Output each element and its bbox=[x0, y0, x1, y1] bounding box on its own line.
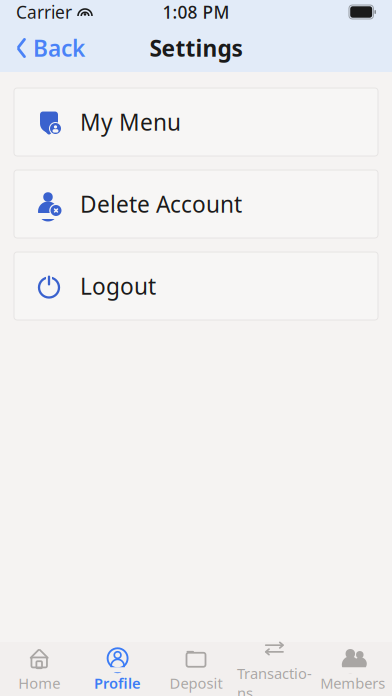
button[interactable]: Home bbox=[0, 639, 78, 696]
button[interactable]: Back bbox=[0, 25, 97, 71]
staticText: Members bbox=[320, 673, 385, 693]
staticText: Profile bbox=[94, 673, 141, 693]
button[interactable]: Deposit bbox=[157, 639, 235, 696]
staticText: Home bbox=[18, 673, 60, 693]
staticText: Logout bbox=[80, 271, 156, 301]
staticText: Carrier bbox=[16, 0, 72, 23]
button[interactable]: My Menu bbox=[14, 88, 378, 156]
staticText: Deposit bbox=[169, 673, 222, 693]
button[interactable]: Transactions bbox=[235, 629, 314, 696]
button[interactable]: Members bbox=[314, 639, 392, 696]
staticText: Back bbox=[33, 33, 85, 63]
staticText: 1:08 PM bbox=[162, 0, 229, 23]
staticText: Delete Account bbox=[80, 189, 242, 219]
staticText: Transactions bbox=[237, 663, 312, 696]
button[interactable]: Delete Account bbox=[14, 170, 378, 238]
staticText: My Menu bbox=[80, 107, 181, 137]
staticText: Settings bbox=[149, 33, 242, 63]
button[interactable]: Logout bbox=[14, 252, 378, 320]
button[interactable]: Profile bbox=[78, 639, 157, 696]
